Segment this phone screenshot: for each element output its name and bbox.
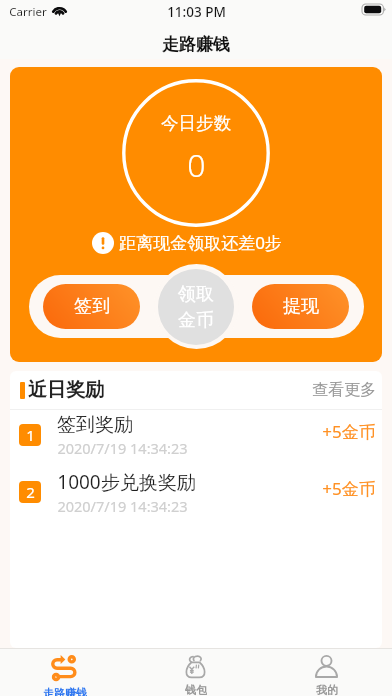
staticText: 我的	[316, 683, 338, 696]
staticText: 金币	[178, 309, 214, 332]
staticText: 走路赚钱	[43, 686, 87, 696]
staticText: 签到	[74, 295, 110, 318]
button[interactable]: 近日奖励	[10, 371, 382, 409]
staticText: 近日奖励	[28, 378, 104, 402]
button[interactable]: 1	[10, 410, 382, 467]
button[interactable]: 领取	[158, 269, 234, 345]
staticText: 2020/7/19 14:34:23	[57, 438, 188, 458]
staticText: 0	[187, 143, 206, 187]
staticText: 提现	[283, 295, 319, 318]
staticText: 2020/7/19 14:34:23	[57, 496, 188, 516]
button[interactable]: 提现	[252, 284, 349, 329]
staticText: 2	[26, 482, 35, 502]
staticText: 查看更多	[312, 380, 376, 400]
staticText: 今日步数	[161, 112, 231, 134]
button[interactable]: Wallet	[130, 649, 261, 696]
staticText: 1	[26, 425, 35, 445]
staticText: 距离现金领取还差0步	[119, 231, 282, 254]
button[interactable]: Profile	[261, 649, 392, 696]
staticText: 1000步兑换奖励	[57, 469, 196, 495]
button[interactable]: 签到	[43, 284, 140, 329]
button[interactable]: 2	[10, 467, 382, 524]
staticText: 走路赚钱	[162, 34, 230, 55]
staticText: +5金币	[322, 477, 376, 500]
staticText: +5金币	[322, 420, 376, 443]
button[interactable]: Walk to earn	[0, 649, 130, 696]
staticText: Carrier	[9, 4, 47, 20]
staticText: 钱包	[185, 683, 207, 696]
staticText: 签到奖励	[57, 413, 133, 437]
staticText: 领取	[178, 283, 214, 306]
staticText: 11:03 PM	[167, 3, 226, 21]
